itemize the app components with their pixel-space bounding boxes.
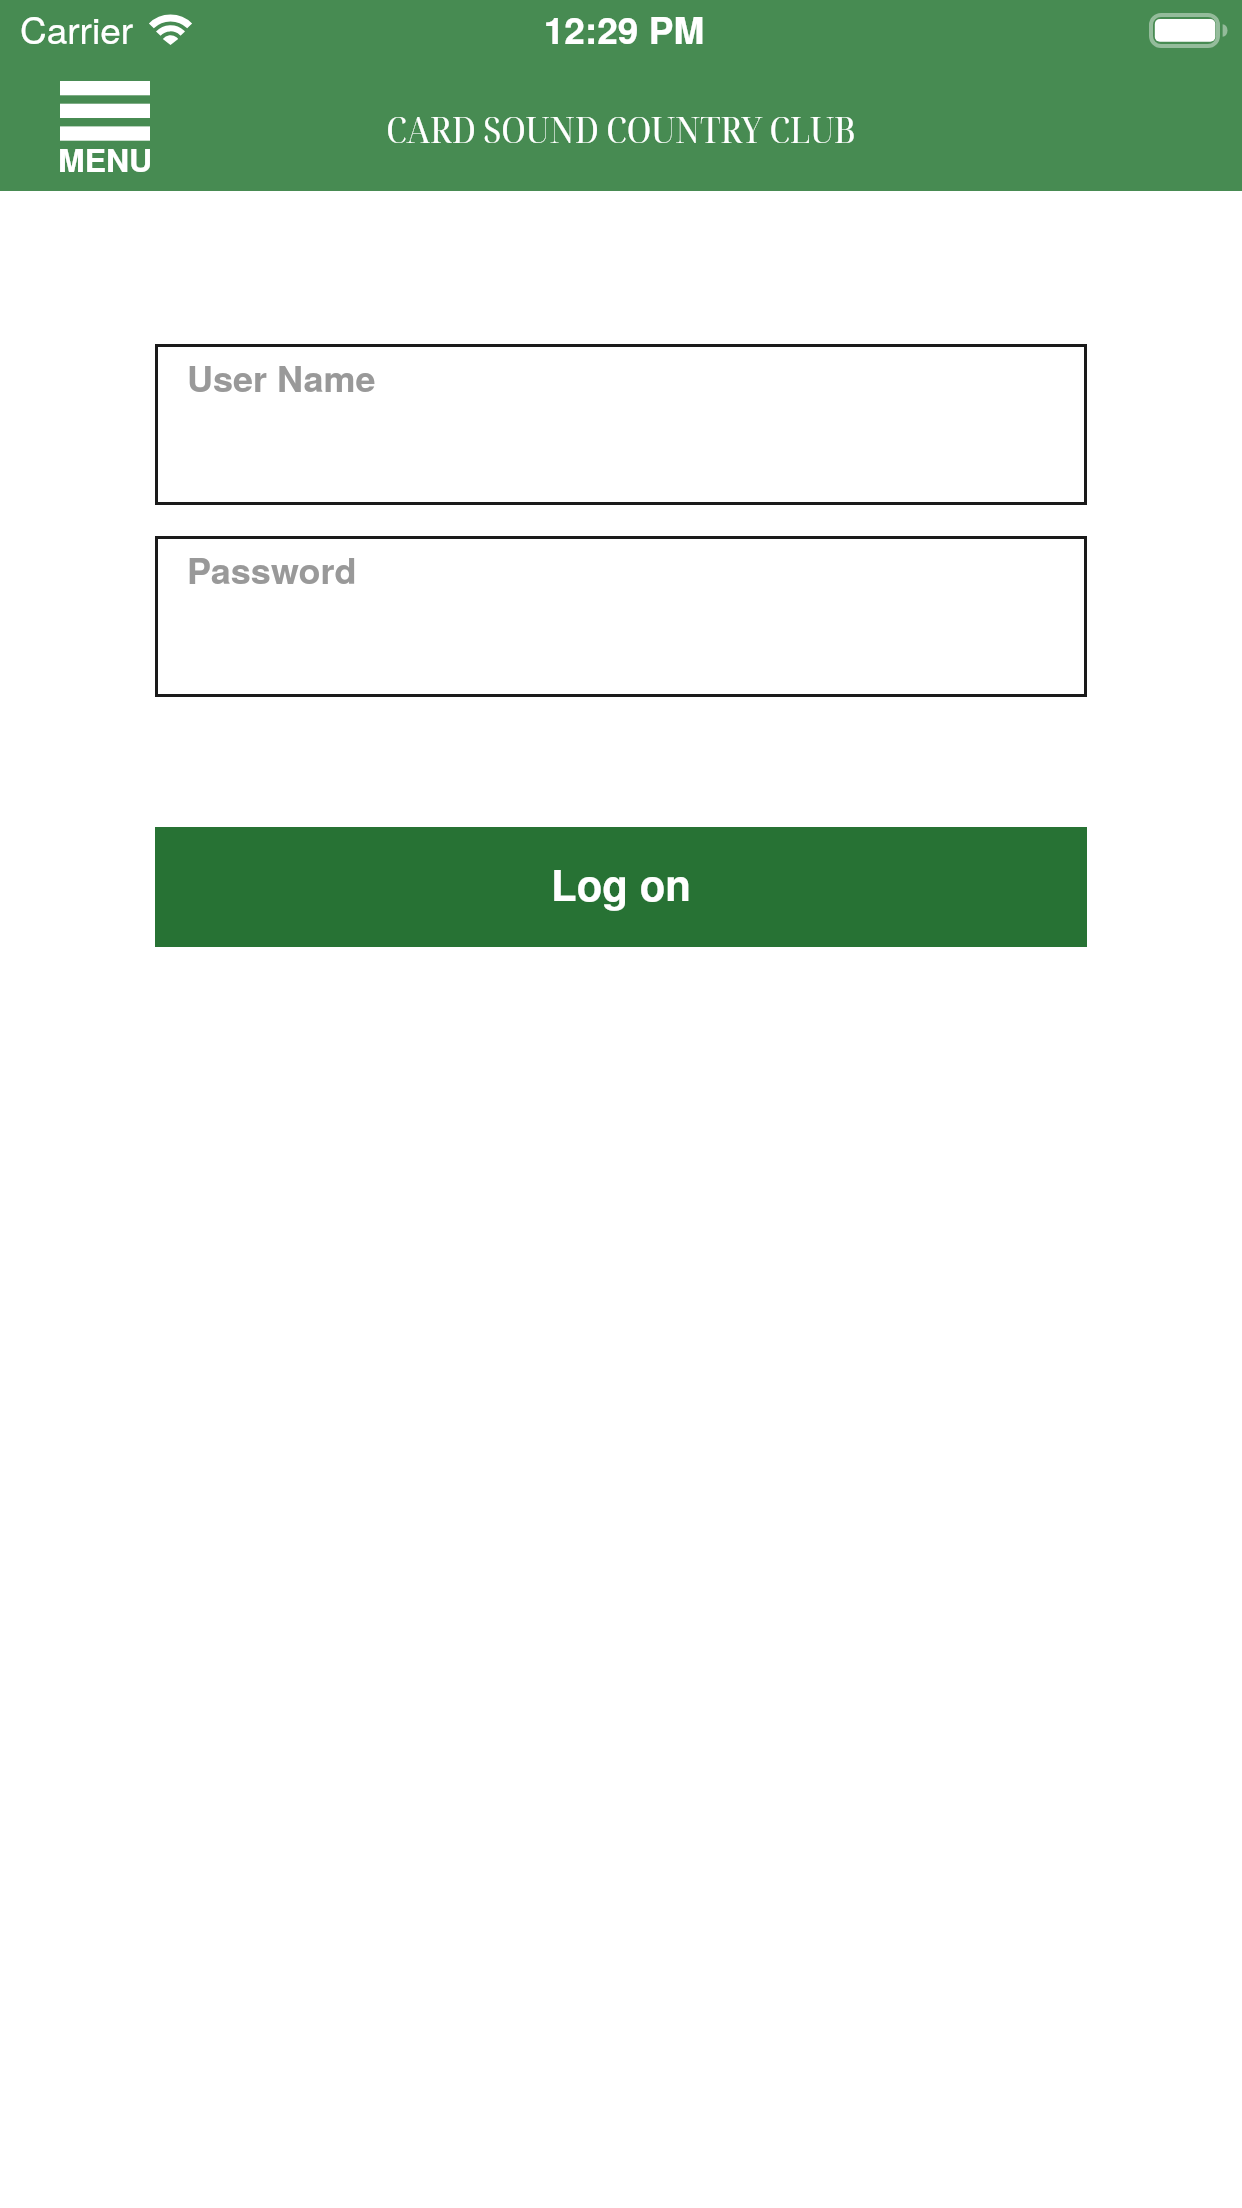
staticText: Carrier (20, 2, 134, 55)
staticText: Password (187, 543, 357, 595)
button[interactable]: Log on (155, 827, 1087, 947)
button[interactable]: User Name (155, 344, 1087, 505)
other: Battery full (1149, 13, 1231, 48)
button[interactable]: Password (155, 536, 1087, 697)
staticText: CARD SOUND COUNTRY CLUB (65, 103, 1177, 153)
staticText: 12:29 PM (3, 2, 1242, 55)
staticText: MENU (58, 136, 153, 182)
staticText: Log on (551, 854, 691, 914)
staticText: User Name (187, 351, 376, 403)
other: Wi-Fi signal (149, 14, 192, 45)
button[interactable]: Menu (48, 69, 162, 181)
